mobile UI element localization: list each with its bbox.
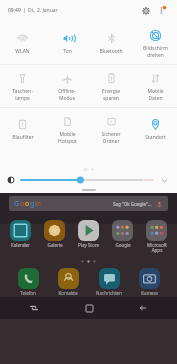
button[interactable]: Voice search <box>156 201 163 208</box>
staticText: Google <box>115 242 131 248</box>
staticText: Play Store <box>78 242 99 248</box>
staticText: WLAN <box>15 48 30 55</box>
staticText: Telefon <box>20 290 36 296</box>
staticText: Di., 2. Januar <box>28 7 58 14</box>
button[interactable]: WLAN <box>0 22 45 64</box>
button[interactable]: Offline- Modus <box>45 65 89 107</box>
staticText: Kontakte <box>58 290 78 296</box>
button[interactable]: Taschen- lampe <box>0 65 45 107</box>
staticText: Offline- Modus <box>58 88 76 101</box>
staticText: Sicherer Ordner <box>101 131 121 144</box>
button[interactable]: G <box>9 196 168 211</box>
staticText: Blaufilter <box>12 134 34 141</box>
staticText: o <box>20 199 25 209</box>
button[interactable]: Back <box>135 300 151 316</box>
button[interactable]: Energie sparen <box>89 65 133 107</box>
staticText: o <box>25 199 30 209</box>
button[interactable]: Home <box>81 300 97 316</box>
staticText: Bluetooth <box>99 48 123 55</box>
staticText: Microsoft Apps <box>147 242 167 254</box>
button[interactable]: Nachrichten <box>91 268 127 296</box>
button[interactable]: Kalender <box>4 220 37 248</box>
button[interactable]: Mobile Daten <box>133 65 177 107</box>
staticText: 09:49 <box>8 7 21 14</box>
button[interactable]: Standort <box>133 108 177 150</box>
button[interactable]: Sicherer Ordner <box>89 108 133 150</box>
staticText: Kalender <box>11 242 30 248</box>
staticText: Kamera <box>141 290 158 296</box>
staticText: Standort <box>145 134 166 141</box>
button[interactable]: More options <box>156 4 169 17</box>
staticText: Taschen- lampe <box>12 88 33 101</box>
button[interactable]: Play Store <box>72 220 105 248</box>
staticText: Sag "Ok Google"... <box>113 201 152 207</box>
button[interactable]: Kontakte <box>50 268 86 296</box>
staticText: Nachrichten <box>96 290 122 296</box>
button[interactable] <box>82 189 96 191</box>
button[interactable]: Google <box>106 220 139 248</box>
staticText: Ton <box>63 48 72 55</box>
button[interactable]: Expand brightness settings <box>159 175 170 186</box>
button[interactable]: Blaufilter <box>0 108 45 150</box>
button[interactable]: Recents <box>26 300 42 316</box>
staticText: Energie sparen <box>102 88 120 101</box>
button[interactable]: Settings <box>139 4 152 17</box>
button[interactable]: Telefon <box>10 268 46 296</box>
staticText: l <box>35 199 37 209</box>
button[interactable]: Kamera <box>131 268 167 296</box>
staticText: Mobile Hotspot <box>58 131 77 144</box>
staticText: g <box>30 199 35 209</box>
staticText: Galerie <box>47 242 63 248</box>
staticText: Bildschirm drehen <box>143 45 168 58</box>
staticText: G <box>14 199 20 209</box>
staticText: e <box>37 199 42 209</box>
button[interactable]: Bildschirm drehen <box>133 22 177 64</box>
button[interactable]: Bluetooth <box>89 22 133 64</box>
button[interactable]: Galerie <box>38 220 71 248</box>
button[interactable]: Ton <box>45 22 89 64</box>
button[interactable]: Microsoft Apps <box>140 220 173 254</box>
staticText: Mobile Daten <box>147 88 164 101</box>
button[interactable]: Mobile Hotspot <box>45 108 89 150</box>
